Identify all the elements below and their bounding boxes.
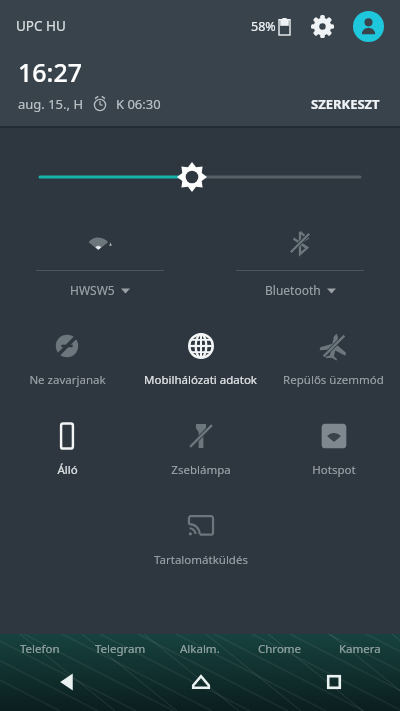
staticText: Álló [57,462,78,478]
staticText: HWSW5 [70,282,115,298]
staticText: Kamera [339,641,381,657]
staticText: Bluetooth [265,282,321,298]
staticText: aug. 15., H [18,95,84,113]
button[interactable]: Home [134,653,267,711]
staticText: Ne zavarjanak [29,372,106,388]
button[interactable]: Telegram [80,636,160,662]
button[interactable]: Kamera [320,636,400,662]
button[interactable]: Zseblámpa [134,418,267,482]
staticText: Alkalm. [180,641,220,657]
button[interactable]: Bluetooth [200,229,400,298]
staticText: 16:27 [18,55,83,89]
staticText: Zseblámpa [171,462,231,478]
button[interactable]: Brightness [0,161,400,193]
button[interactable]: Álló [0,418,134,482]
button[interactable]: Recents [267,653,400,711]
button[interactable]: SZERKESZT [307,91,384,117]
staticText: Mobilhálózati adatok [144,372,257,388]
staticText: Chrome [258,641,302,657]
button[interactable]: HWSW5 [0,229,200,298]
button[interactable]: User account [353,11,384,42]
button[interactable]: Hotspot [267,418,400,482]
button[interactable]: Telefon [0,636,80,662]
staticText: Telegram [95,641,146,657]
staticText: SZERKESZT [311,95,380,113]
staticText: Telefon [20,641,60,657]
button[interactable]: Ne zavarjanak [0,328,134,392]
button[interactable]: Repülős üzemmód [267,328,400,392]
button[interactable]: Settings [307,11,337,41]
staticText: K 06:30 [116,95,161,113]
button[interactable]: Chrome [240,636,320,662]
staticText: UPC HU [16,17,66,35]
button[interactable]: Mobilhálózati adatok [134,328,267,392]
staticText: Tartalomátküldés [154,552,248,568]
button[interactable]: Back [0,653,134,711]
staticText: Hotspot [312,462,356,478]
button[interactable]: Tartalomátküldés [134,508,267,572]
button[interactable]: Alkalm. [160,636,240,662]
staticText: 58% [251,18,276,35]
staticText: Repülős üzemmód [283,372,384,388]
